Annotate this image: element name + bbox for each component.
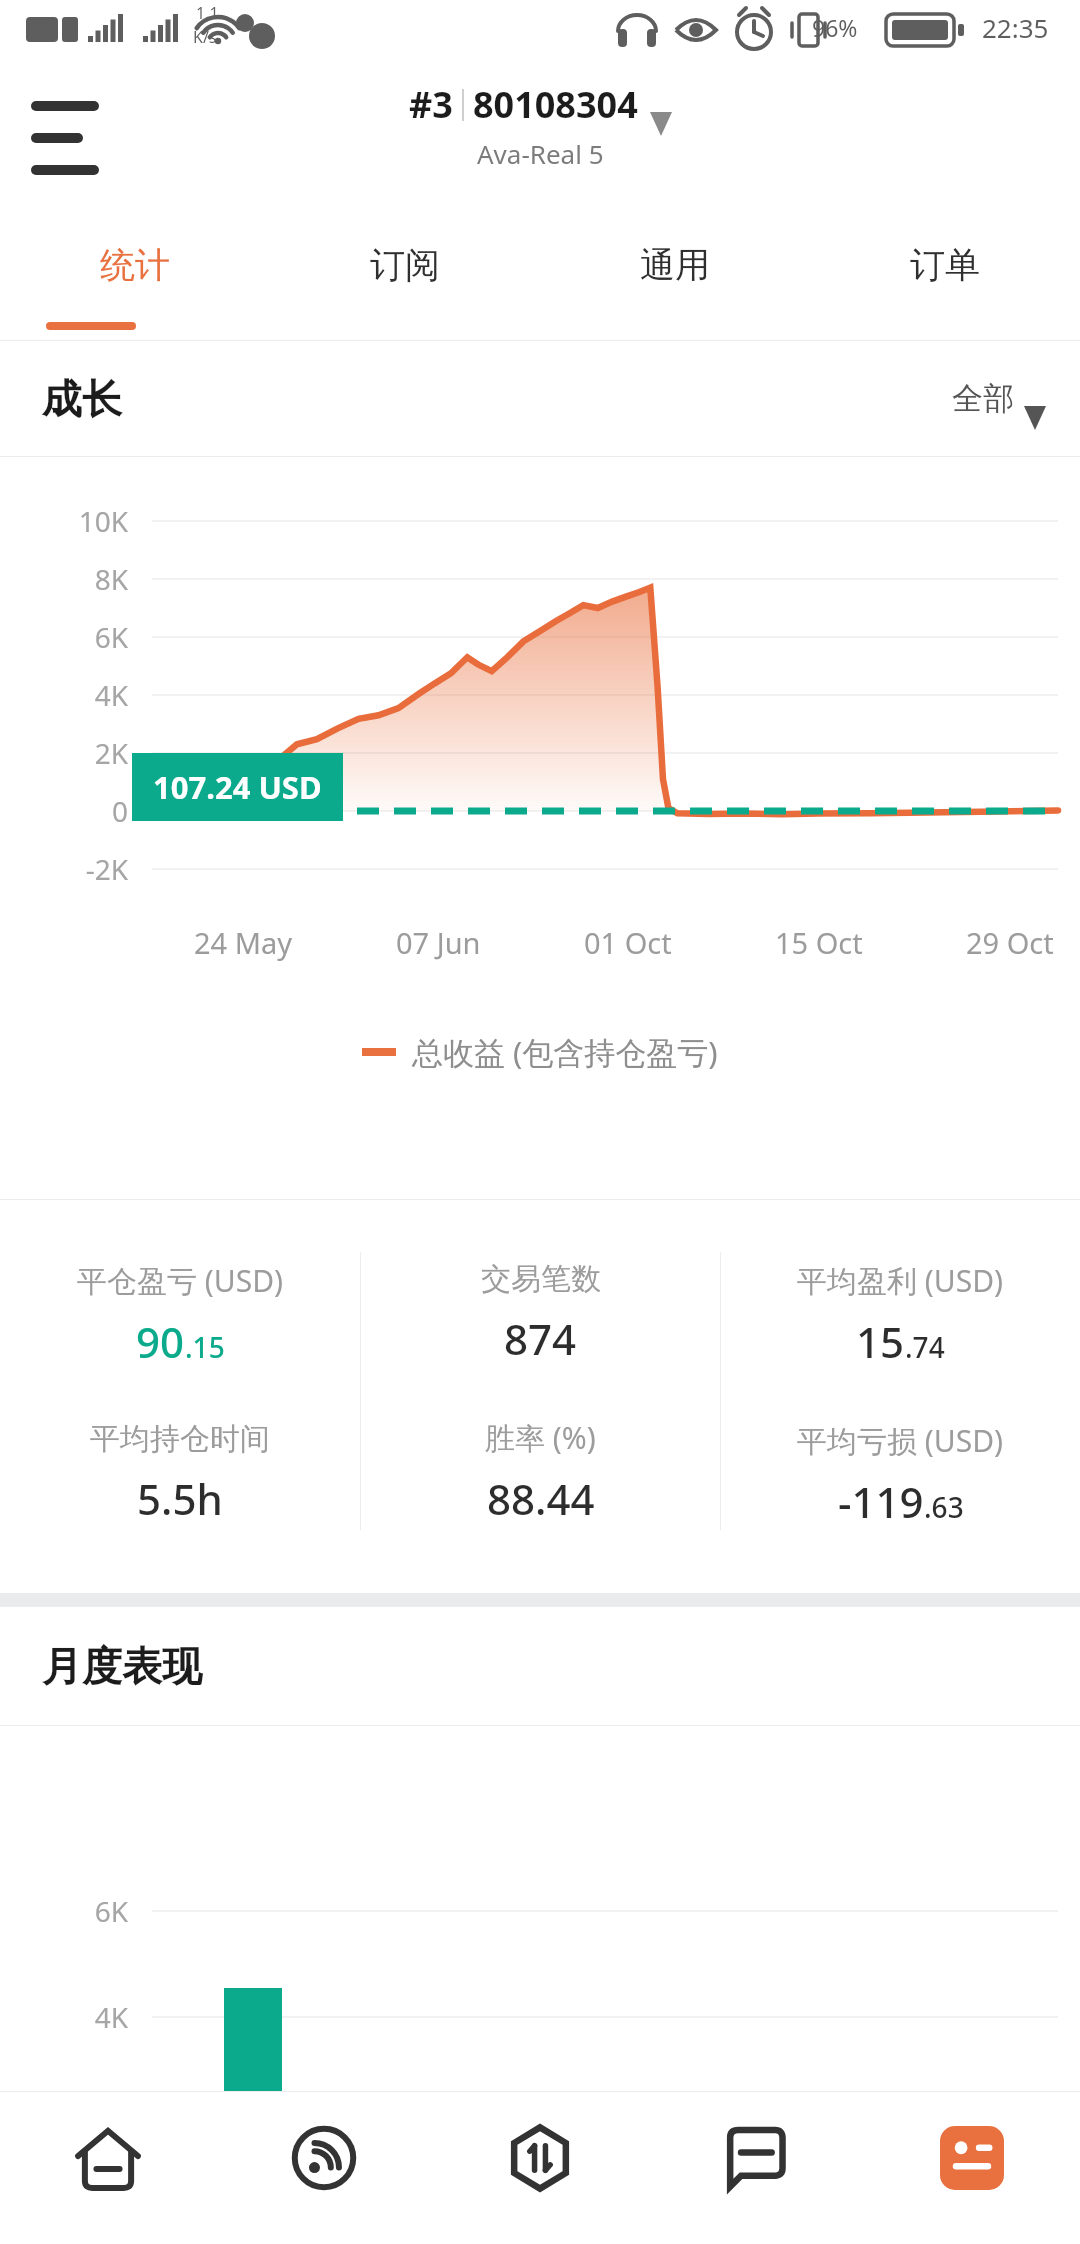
button[interactable]: 全部 [952, 379, 1046, 418]
staticText: 107.24 USD [153, 766, 322, 808]
staticText: 订阅 [370, 243, 440, 287]
staticText: 平均盈利 (USD) [797, 1260, 1004, 1301]
staticText: 01 Oct [584, 923, 672, 962]
staticText: 874 [504, 1310, 577, 1367]
staticText: 订单 [910, 243, 980, 287]
staticText: 总收益 (包含持仓盈亏) [412, 1031, 718, 1073]
staticText: 15 Oct [775, 923, 863, 962]
staticText: 4K [0, 1998, 128, 2036]
staticText: 胜率 (%) [485, 1417, 596, 1458]
staticText: 24 May [194, 923, 293, 962]
button[interactable]: Profile [864, 2092, 1080, 2244]
staticText: 月度表现 [42, 1641, 202, 1691]
staticText: K/s [193, 26, 217, 48]
staticText: 2K [0, 2104, 128, 2142]
button[interactable]: 统计 [0, 210, 270, 340]
staticText: .15 [185, 1328, 225, 1366]
staticText: 2K [0, 734, 128, 772]
staticText: 8K [0, 560, 128, 598]
staticText: 平仓盈亏 (USD) [77, 1260, 284, 1301]
staticText: 22:35 [982, 10, 1049, 45]
button[interactable]: 订单 [810, 210, 1080, 340]
button[interactable]: 订阅 [270, 210, 540, 340]
staticText: 0 [0, 792, 128, 830]
button[interactable]: News [648, 2092, 864, 2244]
staticText: 80108304 [473, 80, 638, 129]
staticText: 90 [136, 1313, 185, 1370]
staticText: 1.1 [196, 2, 219, 24]
staticText: 成长 [42, 374, 122, 424]
staticText: 平均持仓时间 [90, 1420, 270, 1458]
staticText: 15 [856, 1313, 905, 1370]
staticText: 5.5h [137, 1470, 223, 1527]
staticText: 6K [0, 1892, 128, 1930]
staticText: 交易笔数 [481, 1260, 601, 1298]
staticText: 平均亏损 (USD) [797, 1420, 1004, 1461]
staticText: 4K [0, 676, 128, 714]
staticText: 6K [0, 618, 128, 656]
staticText: 统计 [100, 243, 170, 287]
staticText: Ava-Real 5 [477, 136, 604, 171]
staticText: 88.44 [487, 1470, 595, 1527]
staticText: -2K [0, 850, 128, 888]
button[interactable]: 通用 [540, 210, 810, 340]
staticText: #3 [409, 80, 453, 129]
staticText: 全部 [952, 379, 1014, 418]
staticText: -119 [838, 1473, 924, 1530]
button[interactable]: Trade [432, 2092, 648, 2244]
staticText: 通用 [640, 243, 710, 287]
button[interactable]: Home [0, 2092, 216, 2244]
button[interactable]: Menu [24, 86, 104, 158]
staticText: .74 [905, 1328, 945, 1366]
staticText: 10K [0, 502, 128, 540]
staticText: 29 Oct [966, 923, 1054, 962]
button[interactable]: 107.24 USD [153, 766, 322, 808]
staticText: .63 [924, 1488, 964, 1526]
button[interactable]: #3 [409, 80, 672, 129]
staticText: 96% [812, 12, 858, 43]
staticText: 07 Jun [396, 923, 481, 962]
button[interactable]: Signals [216, 2092, 432, 2244]
